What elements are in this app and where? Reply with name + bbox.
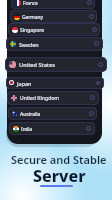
staticText: United Kingdom [20,95,59,102]
button[interactable]: Australia [8,107,97,120]
button[interactable]: India [9,122,95,135]
button[interactable]: Germany [10,10,97,23]
button[interactable]: Japan [6,77,104,89]
button[interactable]: Sweden [6,37,103,51]
staticText: United States [19,61,55,69]
button[interactable]: United Kingdom [7,91,99,105]
staticText: Singapore [20,27,45,34]
staticText: Germany [22,14,44,21]
staticText: Secure and Stable [11,152,107,167]
button[interactable]: United States [5,57,107,72]
button[interactable]: France [11,0,95,9]
button[interactable]: Singapore [8,23,100,36]
staticText: Sweden [19,41,39,48]
staticText: Server [33,165,86,187]
staticText: France [23,0,38,6]
staticText: Japan [17,80,32,87]
staticText: India [21,126,33,132]
staticText: Australia [20,111,41,118]
